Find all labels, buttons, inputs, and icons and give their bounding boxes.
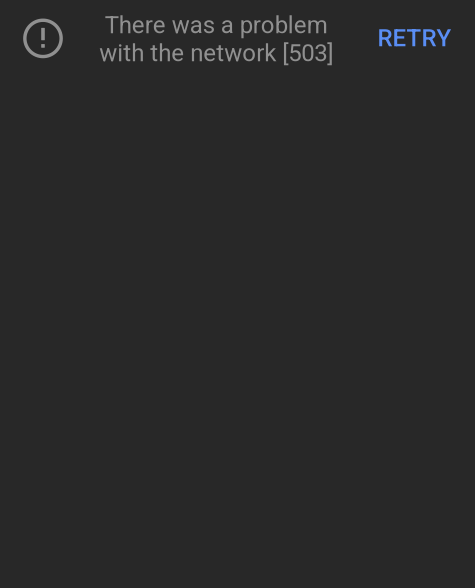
button[interactable]: RETRY bbox=[361, 10, 467, 66]
staticText: RETRY bbox=[377, 24, 451, 52]
staticText: There was a problem with the network [50… bbox=[99, 11, 333, 67]
